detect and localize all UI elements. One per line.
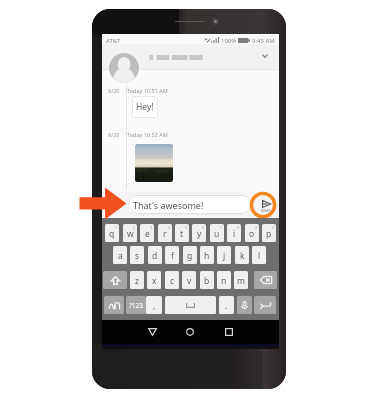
staticText: o	[249, 228, 255, 240]
button[interactable]	[102, 44, 279, 69]
button[interactable]: Voice input	[237, 296, 252, 314]
staticText: i	[233, 228, 236, 240]
button[interactable]: Send message	[255, 193, 277, 215]
staticText: ,	[153, 300, 156, 312]
staticText: g	[187, 250, 193, 262]
staticText: v	[187, 275, 192, 287]
staticText: x	[152, 275, 157, 287]
button[interactable]: 8	[227, 224, 241, 242]
staticText: k	[240, 250, 245, 262]
button[interactable]: l	[252, 246, 266, 264]
staticText: 100%	[221, 37, 237, 45]
button[interactable]: x	[147, 271, 161, 289]
staticText: a	[118, 250, 123, 262]
staticText: z	[135, 275, 139, 287]
button[interactable]: z	[130, 271, 144, 289]
button[interactable]: Back	[142, 322, 162, 342]
button[interactable]: Shift	[103, 271, 127, 289]
button[interactable]: 6	[192, 224, 206, 242]
button[interactable]: Expand conversation details	[256, 47, 274, 65]
button[interactable]: Photo attachment	[135, 144, 173, 182]
staticText: 9/20	[108, 131, 120, 138]
button[interactable]: 1	[105, 224, 119, 242]
staticText: 6	[202, 225, 205, 230]
staticText: e	[145, 228, 150, 240]
staticText: 9/20	[108, 87, 120, 94]
button[interactable]: 3	[140, 224, 154, 242]
button[interactable]: 9	[245, 224, 259, 242]
button[interactable]: f	[165, 246, 179, 264]
staticText: d	[152, 250, 158, 262]
button[interactable]: j	[217, 246, 231, 264]
button[interactable]: That's awesome!	[128, 195, 252, 214]
staticText: q	[109, 228, 115, 240]
staticText: w	[127, 228, 134, 240]
staticText: .	[225, 300, 228, 312]
staticText: n	[221, 275, 227, 287]
staticText: t	[180, 228, 184, 240]
staticText: b	[204, 275, 210, 287]
staticText: 9	[255, 225, 258, 230]
button[interactable]: Symbols	[126, 296, 146, 314]
staticText: r	[163, 228, 167, 240]
button[interactable]: 0	[262, 224, 276, 242]
staticText: ?123	[129, 301, 143, 310]
button[interactable]: b	[200, 271, 214, 289]
staticText: Today 10:51 AM	[127, 87, 168, 94]
staticText: p	[266, 228, 272, 240]
button[interactable]: Home	[180, 322, 200, 342]
staticText: 3	[150, 225, 153, 230]
staticText: 2	[133, 225, 136, 230]
staticText: c	[170, 275, 175, 287]
staticText: 4	[168, 225, 171, 230]
button[interactable]: d	[148, 246, 162, 264]
button[interactable]: v	[182, 271, 196, 289]
button[interactable]: 7	[210, 224, 224, 242]
staticText: AT&T	[106, 37, 120, 45]
button[interactable]: Backspace	[254, 271, 277, 289]
button[interactable]: 2	[123, 224, 137, 242]
button[interactable]: Space	[165, 296, 216, 314]
staticText: 7	[220, 225, 223, 230]
button[interactable]: ,	[146, 296, 162, 314]
staticText: Today 10:52 AM	[127, 131, 168, 138]
button[interactable]: Recent apps	[219, 322, 239, 342]
staticText: m	[237, 275, 245, 287]
staticText: u	[214, 228, 220, 240]
button[interactable]: h	[200, 246, 214, 264]
button[interactable]: .	[219, 296, 234, 314]
button[interactable]: n	[217, 271, 231, 289]
staticText: 0	[272, 225, 275, 230]
button[interactable]: m	[234, 271, 248, 289]
staticText: 5	[185, 225, 188, 230]
staticText: That's awesome!	[133, 199, 204, 211]
staticText: Hey!	[136, 101, 154, 113]
button[interactable]: k	[235, 246, 249, 264]
staticText: y	[197, 228, 202, 240]
staticText: l	[258, 250, 261, 262]
button[interactable]: c	[165, 271, 179, 289]
staticText: 9:45 AM	[252, 37, 275, 45]
button[interactable]: Hey!	[132, 96, 158, 118]
button[interactable]: s	[130, 246, 144, 264]
staticText: MMS	[261, 208, 271, 213]
button[interactable]: 5	[175, 224, 189, 242]
button[interactable]: 4	[158, 224, 172, 242]
button[interactable]: Enter	[254, 296, 276, 314]
button[interactable]: Switch keyboard	[104, 296, 124, 314]
button[interactable]: g	[183, 246, 197, 264]
button[interactable]: a	[113, 246, 127, 264]
staticText: 1	[115, 225, 118, 230]
staticText: s	[135, 250, 140, 262]
staticText: h	[204, 250, 210, 262]
staticText: j	[223, 250, 226, 262]
staticText: f	[171, 250, 174, 262]
staticText: 8	[237, 225, 240, 230]
